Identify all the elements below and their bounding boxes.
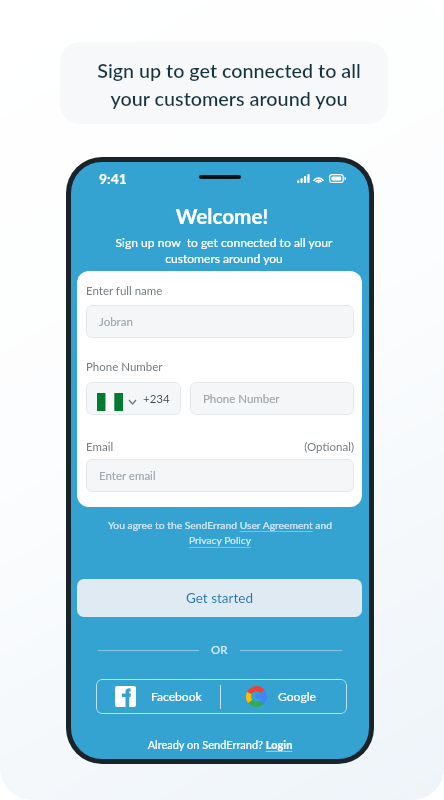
- button[interactable]: Google: [221, 686, 347, 707]
- staticText: Phone Number: [86, 360, 163, 374]
- staticText: Sign up now to get connected to all your…: [87, 235, 361, 266]
- staticText: Jobran: [99, 315, 133, 329]
- staticText: Enter email: [99, 469, 156, 483]
- staticText: Google: [278, 689, 316, 704]
- staticText: (Optional): [86, 440, 354, 454]
- staticText: Welcome!: [73, 204, 369, 229]
- staticText: Facebook: [151, 689, 202, 704]
- staticText: 9:41: [99, 170, 127, 187]
- button[interactable]: Jobran: [86, 305, 354, 338]
- button[interactable]: Enter email: [86, 459, 354, 492]
- staticText: Sign up to get connected to all your cus…: [65, 59, 388, 110]
- staticText: +234: [143, 392, 170, 406]
- staticText: Phone Number: [203, 392, 280, 406]
- button[interactable]: Get started: [77, 579, 362, 617]
- button[interactable]: Already on SendErrand? Login: [71, 738, 369, 751]
- button[interactable]: You agree to the SendErrand User Agreeme…: [87, 519, 353, 547]
- button[interactable]: Facebook: [96, 686, 220, 707]
- button[interactable]: Select country code: [86, 382, 181, 415]
- staticText: OR: [211, 643, 228, 657]
- staticText: Enter full name: [86, 284, 163, 298]
- button[interactable]: Phone Number: [190, 382, 354, 415]
- staticText: Email: [86, 440, 114, 454]
- staticText: Get started: [186, 590, 253, 606]
